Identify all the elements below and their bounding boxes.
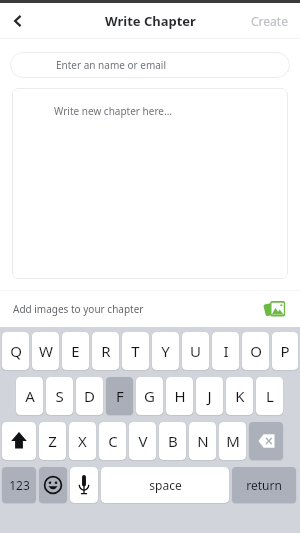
button[interactable]: Backspace xyxy=(249,422,283,460)
staticText: M xyxy=(226,431,240,451)
button[interactable]: U xyxy=(182,332,209,370)
staticText: Y xyxy=(161,341,170,361)
button[interactable]: Add images xyxy=(263,297,287,321)
button[interactable]: D xyxy=(76,377,103,415)
staticText: K xyxy=(235,386,245,406)
staticText: C xyxy=(108,431,118,451)
staticText: Write new chapter here... xyxy=(54,104,172,118)
button[interactable]: Y xyxy=(152,332,179,370)
staticText: F xyxy=(116,386,124,406)
staticText: S xyxy=(55,386,64,406)
staticText: E xyxy=(71,341,80,361)
button[interactable]: I xyxy=(212,332,239,370)
button[interactable]: A xyxy=(16,377,43,415)
button[interactable]: Write new chapter here... xyxy=(12,88,288,279)
button[interactable]: J xyxy=(196,377,223,415)
button[interactable]: W xyxy=(32,332,59,370)
staticText: J xyxy=(207,386,212,406)
staticText: H xyxy=(174,386,186,406)
button[interactable]: R xyxy=(92,332,119,370)
staticText: B xyxy=(168,431,178,451)
button[interactable]: Enter an name or email xyxy=(10,52,290,78)
staticText: G xyxy=(144,386,155,406)
button[interactable]: Voice input xyxy=(70,467,98,503)
staticText: A xyxy=(25,386,35,406)
staticText: U xyxy=(190,341,201,361)
staticText: N xyxy=(197,431,209,451)
button[interactable]: Z xyxy=(39,422,66,460)
staticText: Z xyxy=(48,431,57,451)
button[interactable]: Back xyxy=(0,3,36,38)
button[interactable]: L xyxy=(256,377,283,415)
staticText: T xyxy=(131,341,140,361)
staticText: Write Chapter xyxy=(105,12,196,30)
staticText: Create xyxy=(251,13,288,29)
button[interactable]: Add images to your chapter xyxy=(0,291,300,327)
button[interactable]: space xyxy=(101,467,229,503)
button[interactable]: V xyxy=(129,422,156,460)
button[interactable]: return xyxy=(232,467,296,503)
button[interactable]: E xyxy=(62,332,89,370)
staticText: P xyxy=(280,341,290,361)
staticText: Enter an name or email xyxy=(56,58,167,72)
button[interactable]: F xyxy=(106,377,133,415)
staticText: D xyxy=(84,386,95,406)
button[interactable]: X xyxy=(69,422,96,460)
staticText: V xyxy=(138,431,148,451)
staticText: L xyxy=(266,386,274,406)
button[interactable]: M xyxy=(219,422,246,460)
button[interactable]: 123 xyxy=(2,467,36,503)
staticText: W xyxy=(39,341,53,361)
button[interactable]: K xyxy=(226,377,253,415)
staticText: X xyxy=(78,431,87,451)
button[interactable]: H xyxy=(166,377,193,415)
button[interactable]: O xyxy=(242,332,269,370)
button[interactable]: N xyxy=(189,422,216,460)
button[interactable]: Shift xyxy=(2,422,36,460)
button[interactable]: Create xyxy=(247,9,292,33)
staticText: I xyxy=(223,341,229,361)
button[interactable]: B xyxy=(159,422,186,460)
staticText: Add images to your chapter xyxy=(13,302,144,316)
staticText: Q xyxy=(10,341,22,361)
button[interactable]: Emoji xyxy=(39,467,67,503)
staticText: 123 xyxy=(9,477,30,493)
button[interactable]: C xyxy=(99,422,126,460)
staticText: return xyxy=(246,477,282,493)
button[interactable]: G xyxy=(136,377,163,415)
button[interactable]: T xyxy=(122,332,149,370)
staticText: O xyxy=(250,341,262,361)
staticText: space xyxy=(149,477,182,493)
button[interactable]: Q xyxy=(2,332,29,370)
button[interactable]: P xyxy=(272,332,298,370)
staticText: R xyxy=(101,341,111,361)
button[interactable]: S xyxy=(46,377,73,415)
